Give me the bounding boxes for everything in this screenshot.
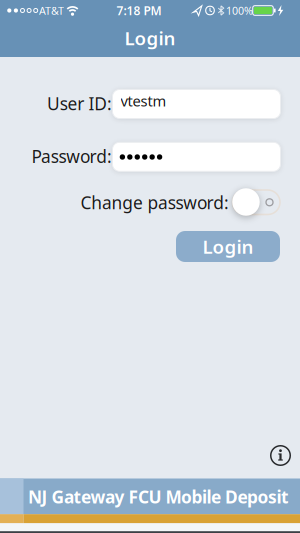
staticText: Login: [202, 234, 253, 259]
staticText: 7:18 PM: [116, 2, 161, 18]
staticText: Login: [124, 26, 175, 50]
staticText: NJ Gateway FCU Mobile Deposit: [28, 485, 289, 508]
staticText: User ID:: [47, 92, 112, 115]
staticText: AT&T: [39, 3, 64, 18]
staticText: Change password:: [80, 191, 229, 214]
staticText: Password:: [31, 145, 112, 168]
staticText: 100%: [226, 3, 253, 18]
staticText: vtestm: [120, 91, 166, 111]
button[interactable]: Login: [176, 231, 280, 262]
button[interactable]: Change password: [231, 187, 281, 217]
button[interactable]: Info: [269, 444, 291, 466]
